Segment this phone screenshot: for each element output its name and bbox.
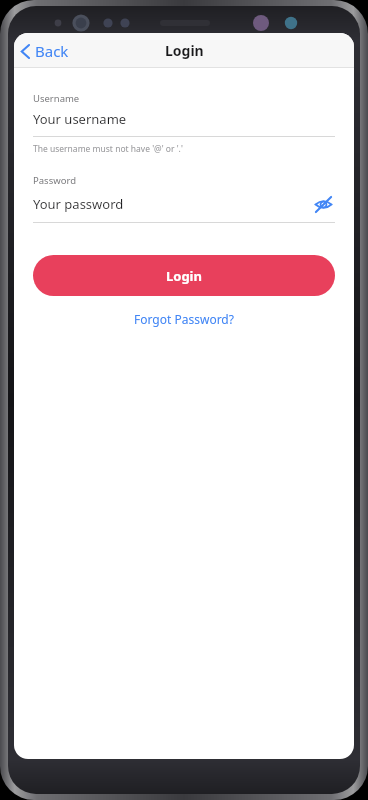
button[interactable]: Show password	[311, 192, 335, 216]
button[interactable]: Back	[14, 37, 79, 65]
staticText: Your password	[33, 195, 124, 213]
staticText: Username	[33, 92, 80, 105]
staticText: The username must not have '@' or '.'	[33, 143, 183, 155]
staticText: Login	[166, 267, 202, 285]
staticText: Your username	[33, 110, 127, 128]
staticText: Login	[165, 41, 204, 60]
staticText: Back	[35, 41, 69, 61]
button[interactable]: Your username	[33, 110, 335, 128]
staticText: Password	[33, 174, 76, 187]
staticText: Forgot Password?	[134, 311, 234, 327]
button[interactable]: Your password	[33, 195, 124, 213]
button[interactable]: Forgot Password?	[126, 309, 242, 329]
button[interactable]: Login	[33, 255, 335, 296]
